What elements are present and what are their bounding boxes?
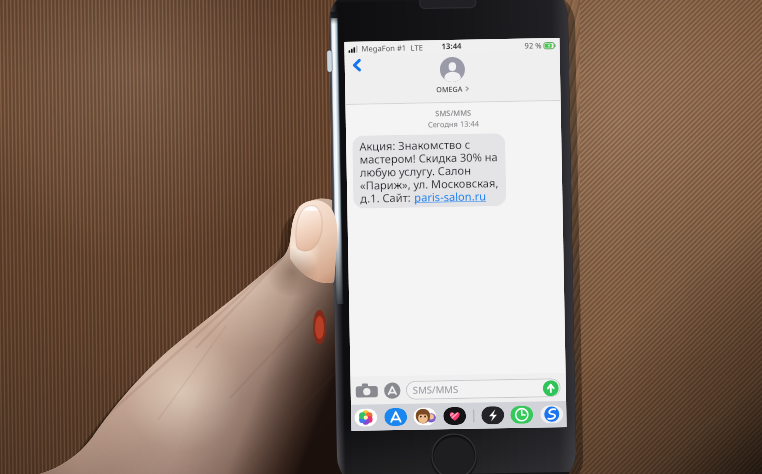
staticText: Акция: Знакомство с xyxy=(359,137,470,154)
staticText: MegaFon #1 xyxy=(361,43,407,54)
button[interactable]: Акция: Знакомство с xyxy=(352,133,506,209)
button[interactable]: Back xyxy=(350,58,365,73)
staticText: Сегодня 13:44 xyxy=(346,117,561,131)
staticText: «Париж», ул. Московская, xyxy=(360,175,499,193)
button[interactable]: App Store xyxy=(384,382,401,399)
button[interactable]: Shazam xyxy=(540,405,563,423)
button[interactable]: Camera xyxy=(356,382,378,399)
button[interactable]: OMEGA xyxy=(436,57,469,94)
staticText: SMS/MMS xyxy=(346,106,561,120)
button[interactable]: Digital Touch xyxy=(443,407,466,425)
staticText: LTE xyxy=(410,42,424,53)
staticText: д.1. Сайт: xyxy=(360,190,414,206)
button[interactable]: Clock xyxy=(510,405,533,424)
button[interactable]: SMS/MMS xyxy=(406,378,561,400)
staticText: любую услугу. Салон xyxy=(360,163,472,180)
staticText: SMS/MMS xyxy=(413,383,459,397)
staticText: мастером! Скидка 30% на xyxy=(359,149,499,167)
button[interactable]: Memoji xyxy=(413,407,436,426)
staticText: 13:44 xyxy=(441,41,463,52)
staticText: 92 % xyxy=(524,40,542,51)
button[interactable]: Activity xyxy=(481,406,504,424)
button[interactable]: App Store xyxy=(384,408,407,426)
button[interactable]: Photos xyxy=(354,408,377,427)
button[interactable]: Send xyxy=(543,380,559,396)
staticText: paris-salon.ru xyxy=(414,188,486,205)
staticText: OMEGA xyxy=(436,84,463,94)
